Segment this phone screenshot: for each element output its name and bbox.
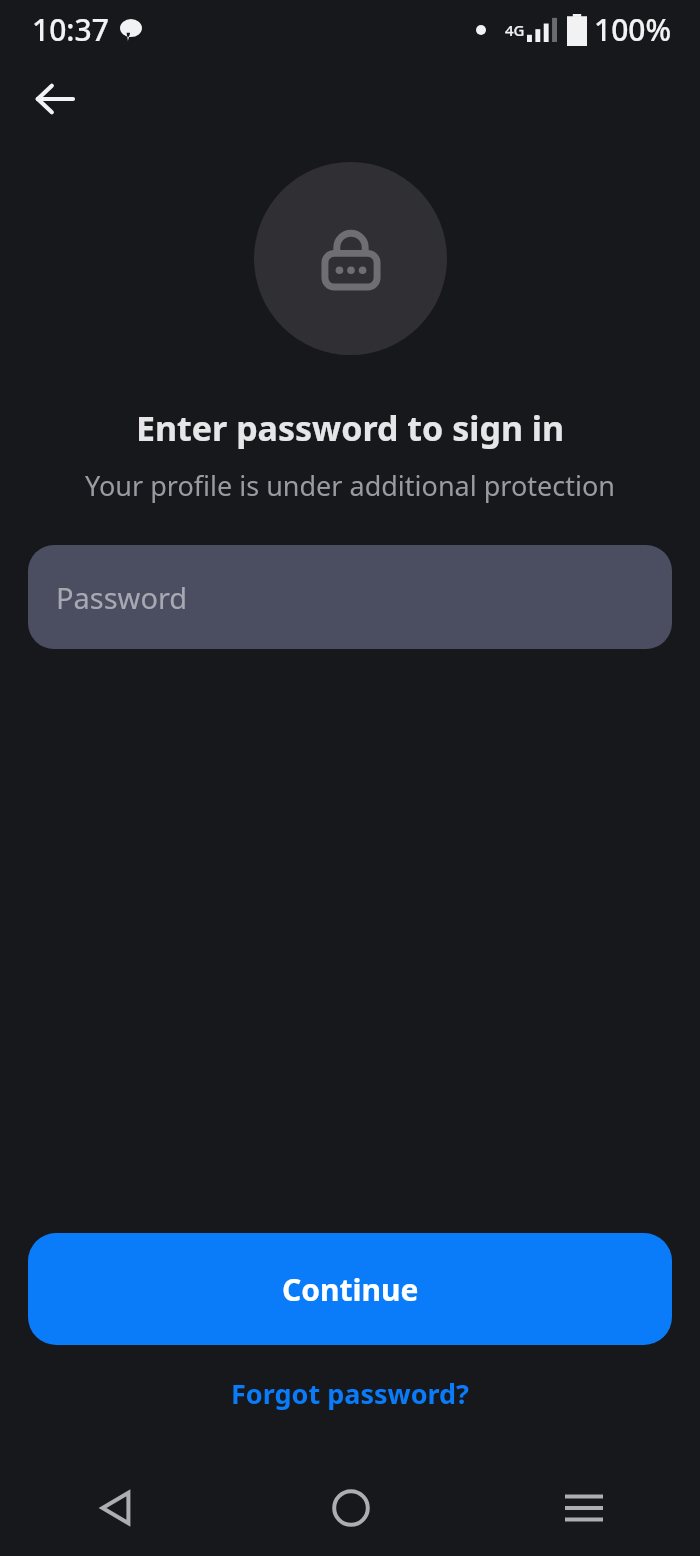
- staticText: 100%: [594, 9, 672, 50]
- button[interactable]: Continue: [28, 1233, 672, 1345]
- button[interactable]: Home: [234, 1460, 467, 1556]
- staticText: Continue: [282, 1269, 419, 1310]
- staticText: Password: [56, 578, 188, 617]
- button[interactable]: Back: [26, 70, 84, 128]
- staticText: 4G: [505, 20, 525, 40]
- button[interactable]: Password: [28, 545, 672, 649]
- button[interactable]: Forgot password?: [217, 1369, 483, 1418]
- button[interactable]: Recent apps: [467, 1460, 700, 1556]
- staticText: Enter password to sign in: [0, 405, 700, 451]
- button[interactable]: Back: [0, 1460, 234, 1556]
- staticText: 10:37: [32, 9, 109, 50]
- staticText: Forgot password?: [231, 1375, 469, 1412]
- staticText: Your profile is under additional protect…: [0, 467, 700, 504]
